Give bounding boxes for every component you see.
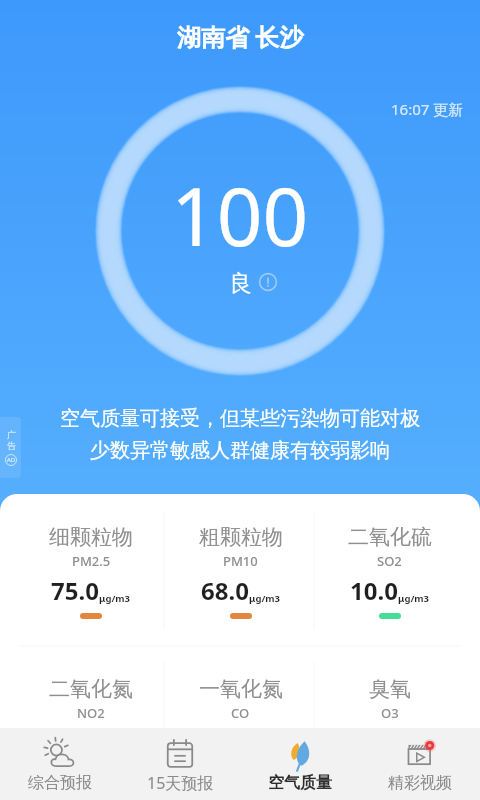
staticText: NO2 bbox=[77, 704, 105, 722]
staticText: 空气质量可接受，但某些污染物可能对极 bbox=[60, 406, 420, 431]
staticText: 空气质量 bbox=[268, 773, 332, 793]
staticText: μg/m3 bbox=[99, 592, 131, 605]
button[interactable]: 二氧化硫 bbox=[315, 494, 464, 619]
staticText: O3 bbox=[381, 704, 399, 722]
button[interactable]: Air quality info bbox=[258, 272, 278, 292]
button[interactable]: 细颗粒物 bbox=[16, 494, 166, 619]
staticText: 75.0 bbox=[51, 574, 99, 607]
staticText: 综合预报 bbox=[28, 773, 92, 793]
staticText: SO2 bbox=[377, 552, 402, 570]
staticText: AD bbox=[7, 456, 16, 464]
staticText: 10.0 bbox=[350, 574, 398, 607]
staticText: μg/m3 bbox=[249, 592, 281, 605]
staticText: 一氧化氮 bbox=[199, 676, 283, 702]
staticText: PM10 bbox=[223, 552, 258, 570]
staticText: 湖南省 长沙 bbox=[177, 20, 304, 53]
button[interactable]: 二氧化氮 bbox=[16, 646, 166, 722]
staticText: 68.0 bbox=[201, 574, 249, 607]
button[interactable]: 综合预报 bbox=[0, 736, 120, 793]
staticText: 少数异常敏感人群健康有较弱影响 bbox=[90, 438, 390, 463]
button[interactable]: 湖南省 长沙 bbox=[0, 0, 480, 72]
staticText: PM2.5 bbox=[72, 552, 111, 570]
staticText: 臭氧 bbox=[369, 676, 411, 702]
button[interactable]: 一氧化氮 bbox=[166, 646, 315, 722]
button[interactable]: 粗颗粒物 bbox=[166, 494, 315, 619]
staticText: 精彩视频 bbox=[388, 773, 452, 793]
staticText: 广 bbox=[7, 429, 16, 440]
staticText: 二氧化氮 bbox=[49, 676, 133, 702]
staticText: 16:07 更新 bbox=[391, 99, 464, 119]
staticText: 15天预报 bbox=[147, 772, 214, 794]
staticText: 细颗粒物 bbox=[49, 524, 133, 550]
button[interactable]: 臭氧 bbox=[315, 646, 464, 722]
staticText: 良 bbox=[229, 269, 252, 298]
staticText: 粗颗粒物 bbox=[199, 524, 283, 550]
staticText: 二氧化硫 bbox=[348, 524, 432, 550]
button[interactable]: 15天预报 bbox=[120, 735, 240, 794]
staticText: μg/m3 bbox=[398, 592, 430, 605]
staticText: 告 bbox=[7, 440, 16, 451]
button[interactable]: 空气质量 bbox=[240, 736, 360, 793]
staticText: 100 bbox=[171, 160, 309, 252]
button[interactable]: Advertisement bbox=[0, 417, 21, 478]
staticText: CO bbox=[231, 704, 250, 722]
button[interactable]: 精彩视频 bbox=[360, 736, 480, 793]
